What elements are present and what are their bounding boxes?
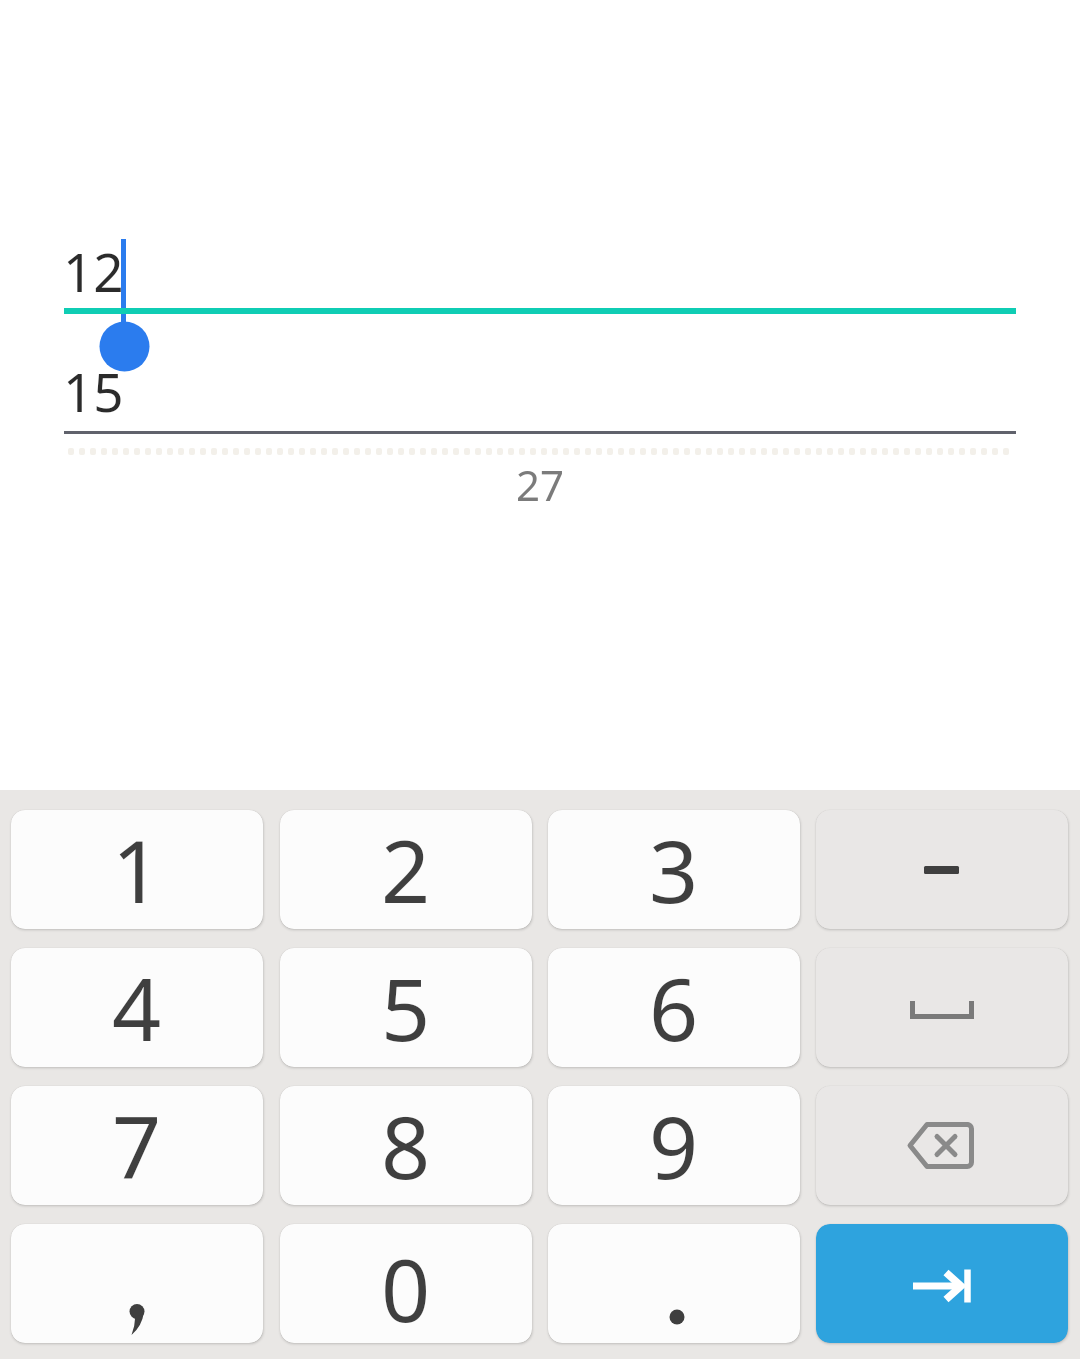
button[interactable]: 3 [548, 810, 800, 929]
staticText: 5 [381, 949, 431, 1066]
button[interactable]: 9 [548, 1086, 800, 1205]
staticText: 12 [63, 235, 124, 307]
staticText: 8 [381, 1087, 431, 1204]
staticText: 4 [112, 949, 162, 1066]
button[interactable]: 15 [0, 360, 1080, 436]
staticText: 0 [381, 1230, 431, 1343]
button[interactable] [816, 810, 1068, 929]
staticText: 3 [649, 811, 699, 928]
staticText: 9 [649, 1087, 699, 1204]
staticText: 15 [63, 355, 124, 427]
button[interactable]: 2 [280, 810, 532, 929]
button[interactable] [816, 1224, 1068, 1343]
staticText: 1 [112, 811, 162, 928]
button[interactable]: 5 [280, 948, 532, 1067]
button[interactable]: 8 [280, 1086, 532, 1205]
button[interactable] [11, 1224, 263, 1343]
staticText: 6 [649, 949, 699, 1066]
button[interactable]: 12 [0, 235, 1080, 315]
button[interactable]: 4 [11, 948, 263, 1067]
button[interactable] [816, 948, 1068, 1067]
button[interactable]: 0 [280, 1224, 532, 1343]
button[interactable]: 6 [548, 948, 800, 1067]
button[interactable] [816, 1086, 1068, 1205]
button[interactable] [548, 1224, 800, 1343]
button[interactable]: 7 [11, 1086, 263, 1205]
staticText: 2 [381, 811, 431, 928]
staticText: 7 [112, 1087, 162, 1204]
staticText: 27 [516, 456, 565, 513]
button[interactable]: 1 [11, 810, 263, 929]
